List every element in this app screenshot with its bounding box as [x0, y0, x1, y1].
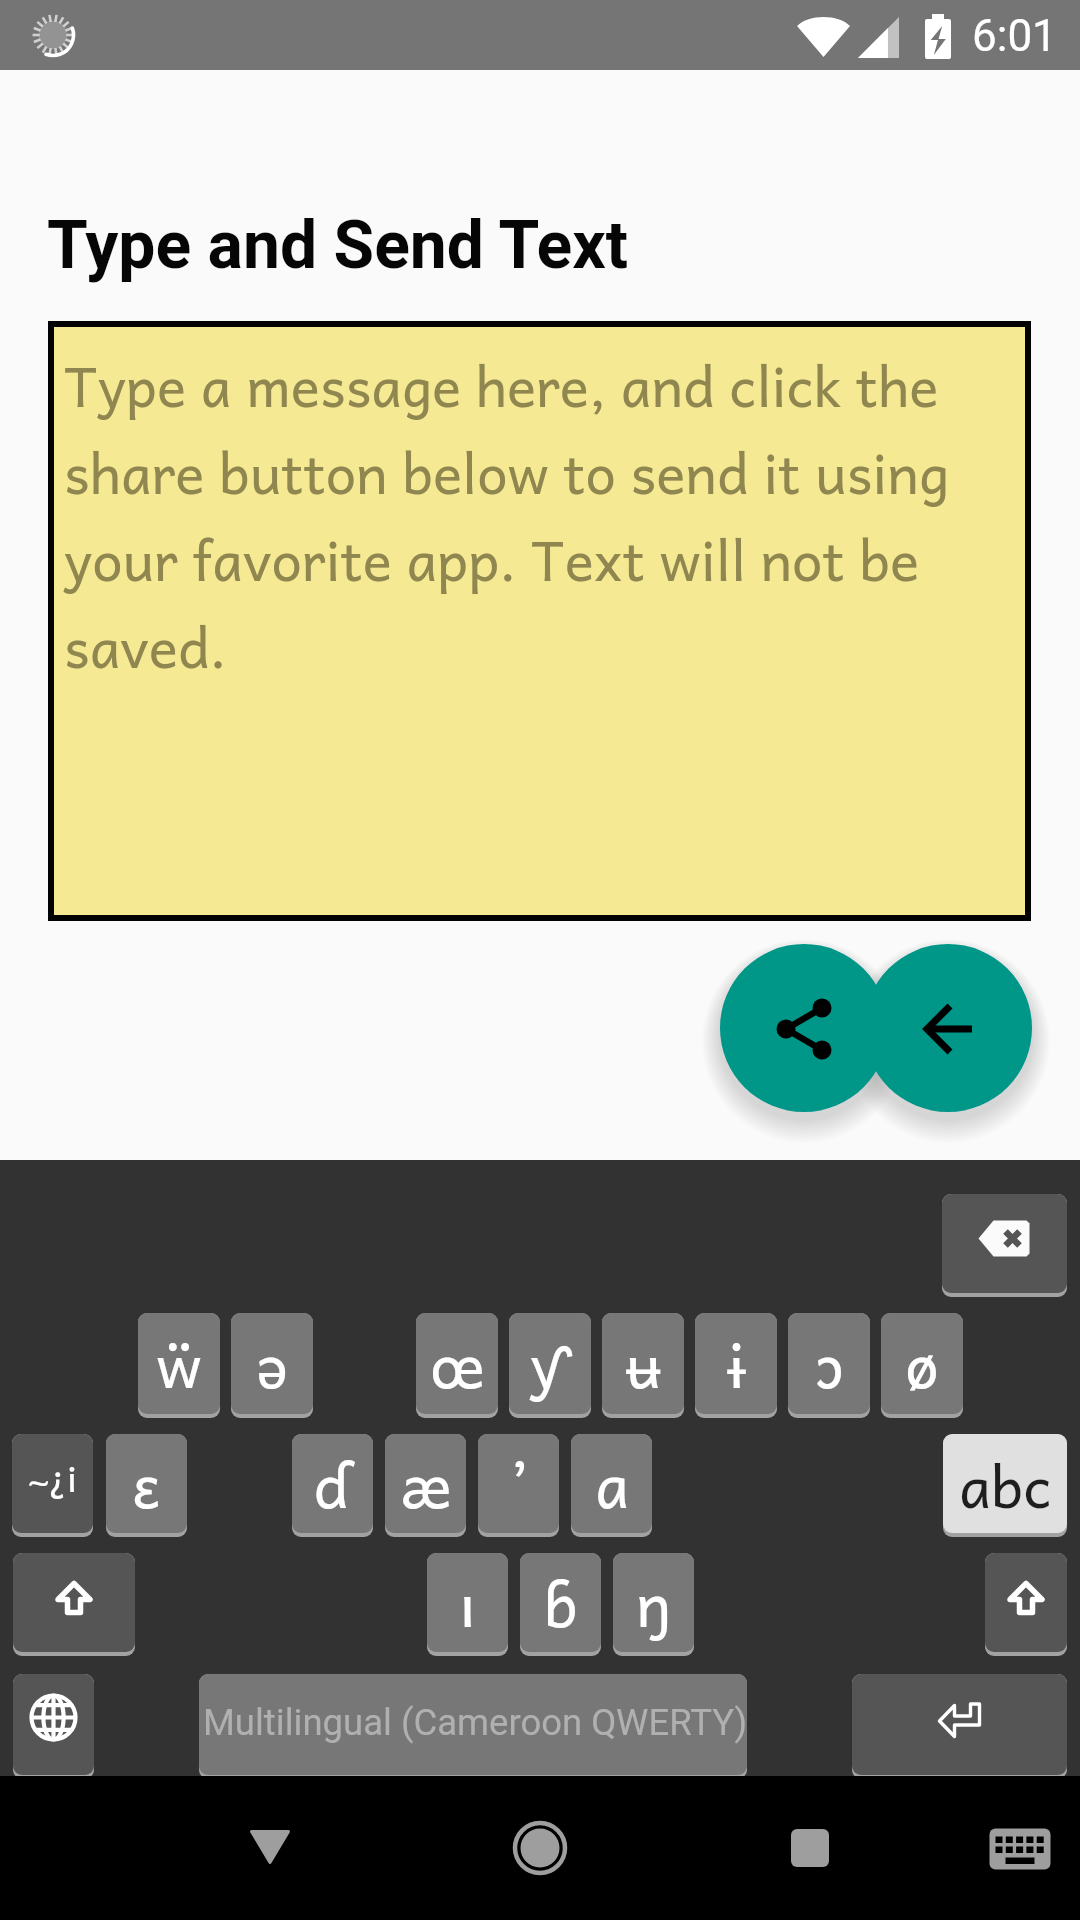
- staticText: ŋ: [636, 1554, 671, 1651]
- button[interactable]: Type a message here, and click the share…: [54, 327, 1025, 915]
- staticText: œ: [430, 1315, 485, 1412]
- button[interactable]: ɓ: [520, 1553, 601, 1652]
- button[interactable]: ŋ: [613, 1553, 694, 1652]
- button[interactable]: ’: [478, 1434, 559, 1533]
- staticText: ı: [459, 1554, 476, 1651]
- button[interactable]: æ: [385, 1434, 466, 1533]
- button[interactable]: ɨ: [695, 1313, 777, 1414]
- button[interactable]: Shift: [985, 1553, 1067, 1652]
- button[interactable]: Shift: [13, 1553, 135, 1652]
- button[interactable]: ø: [881, 1313, 963, 1414]
- staticText: ɨ: [725, 1315, 748, 1412]
- staticText: ~¿i: [29, 1448, 77, 1506]
- button[interactable]: ƴ: [509, 1313, 591, 1414]
- staticText: 6:01: [972, 10, 1057, 62]
- staticText: ɗ: [313, 1435, 352, 1532]
- button[interactable]: Back: [864, 944, 1032, 1112]
- staticText: ɛ: [132, 1435, 161, 1532]
- button[interactable]: Switch keyboard: [985, 1799, 1055, 1869]
- button[interactable]: ə: [231, 1313, 313, 1414]
- button[interactable]: Change language: [13, 1674, 94, 1775]
- button[interactable]: Backspace: [942, 1194, 1067, 1293]
- button[interactable]: Share: [720, 944, 888, 1112]
- staticText: ’: [511, 1435, 527, 1532]
- staticText: æ: [400, 1435, 452, 1532]
- staticText: ø: [905, 1315, 939, 1412]
- button[interactable]: Back: [240, 1799, 300, 1859]
- staticText: ʉ: [623, 1315, 663, 1412]
- button[interactable]: ɛ: [106, 1434, 187, 1533]
- staticText: ɑ: [595, 1435, 629, 1532]
- staticText: Type and Send Text: [47, 207, 629, 284]
- staticText: Multilingual (Cameroon QWERTY): [203, 1701, 747, 1744]
- staticText: ẅ: [156, 1315, 202, 1412]
- button[interactable]: ẅ: [138, 1313, 220, 1414]
- staticText: Type a message here, and click the share…: [64, 340, 1025, 689]
- button[interactable]: Recent apps: [780, 1799, 840, 1859]
- button[interactable]: œ: [416, 1313, 498, 1414]
- button[interactable]: ı: [427, 1553, 508, 1652]
- staticText: ƴ: [530, 1315, 570, 1412]
- button[interactable]: ʉ: [602, 1313, 684, 1414]
- button[interactable]: Symbols: [12, 1434, 93, 1533]
- staticText: abc: [959, 1438, 1052, 1530]
- button[interactable]: ɑ: [571, 1434, 652, 1533]
- button[interactable]: Space: [199, 1674, 747, 1775]
- staticText: ə: [256, 1315, 288, 1412]
- button[interactable]: Home: [510, 1799, 570, 1859]
- button[interactable]: abc: [943, 1434, 1067, 1533]
- button[interactable]: ɔ: [788, 1313, 870, 1414]
- button[interactable]: ɗ: [292, 1434, 373, 1533]
- button[interactable]: Enter: [852, 1674, 1067, 1775]
- staticText: ɔ: [814, 1315, 844, 1412]
- staticText: ɓ: [544, 1554, 578, 1651]
